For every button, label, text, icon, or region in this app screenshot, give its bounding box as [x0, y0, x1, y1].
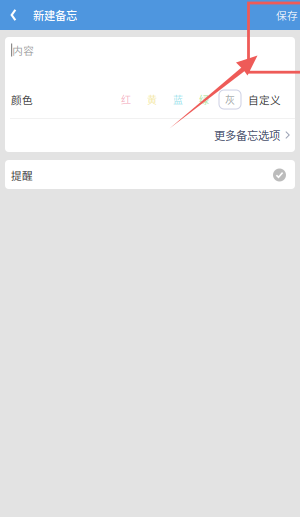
staticText: 提醒 — [11, 167, 33, 183]
button[interactable]: 黄 — [139, 89, 165, 110]
button[interactable]: Back — [0, 0, 27, 30]
staticText: 自定义 — [248, 92, 281, 107]
staticText: 红 — [121, 92, 131, 107]
staticText: 灰 — [225, 92, 235, 107]
button[interactable]: 提醒 — [5, 152, 295, 189]
button[interactable]: 自定义 — [243, 89, 286, 110]
button[interactable]: 蓝 — [165, 89, 191, 110]
staticText: 黄 — [147, 92, 157, 107]
staticText: 保存 — [276, 7, 298, 23]
button[interactable]: 绿 — [191, 89, 217, 110]
button[interactable]: 保存 — [276, 0, 300, 30]
button[interactable]: 红 — [113, 89, 139, 110]
staticText: 绿 — [199, 92, 209, 107]
staticText: 更多备忘选项 — [214, 127, 280, 143]
staticText: 内容 — [12, 42, 34, 58]
staticText: 蓝 — [173, 92, 183, 107]
staticText: 颜色 — [11, 92, 33, 107]
button[interactable]: 更多备忘选项 — [5, 37, 290, 150]
staticText: 新建备忘 — [33, 7, 77, 23]
button[interactable]: 灰 — [217, 89, 243, 110]
